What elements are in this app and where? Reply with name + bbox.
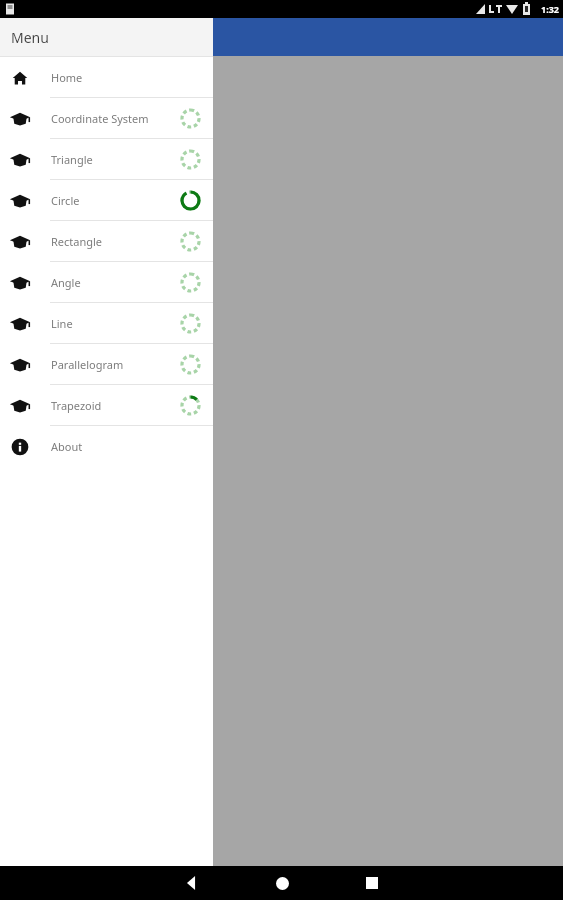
button[interactable]: Rectangle [0,221,213,262]
staticText: Trapezoid [51,398,102,413]
staticText: Parallelogram [51,357,124,372]
button[interactable]: Angle [0,262,213,303]
staticText: Circle [51,193,80,208]
button[interactable]: Home [0,57,213,98]
button[interactable]: Circle [0,180,213,221]
button[interactable]: Home [258,866,306,900]
button[interactable]: Coordinate System [0,98,213,139]
staticText: Triangle [51,152,93,167]
button[interactable]: Parallelogram [0,344,213,385]
staticText: About [51,439,83,454]
button[interactable]: About [0,426,213,467]
button[interactable]: Back [168,866,216,900]
staticText: Coordinate System [51,111,149,126]
button[interactable]: Menu [0,18,213,56]
staticText: Home [51,70,83,85]
button[interactable]: Triangle [0,139,213,180]
staticText: 1:32 [541,3,559,15]
staticText: Line [51,316,73,331]
staticText: Menu [11,28,49,47]
button[interactable]: Trapezoid [0,385,213,426]
staticText: Rectangle [51,234,103,249]
staticText: Angle [51,275,81,290]
button[interactable]: Recent apps [348,866,396,900]
button[interactable]: Line [0,303,213,344]
